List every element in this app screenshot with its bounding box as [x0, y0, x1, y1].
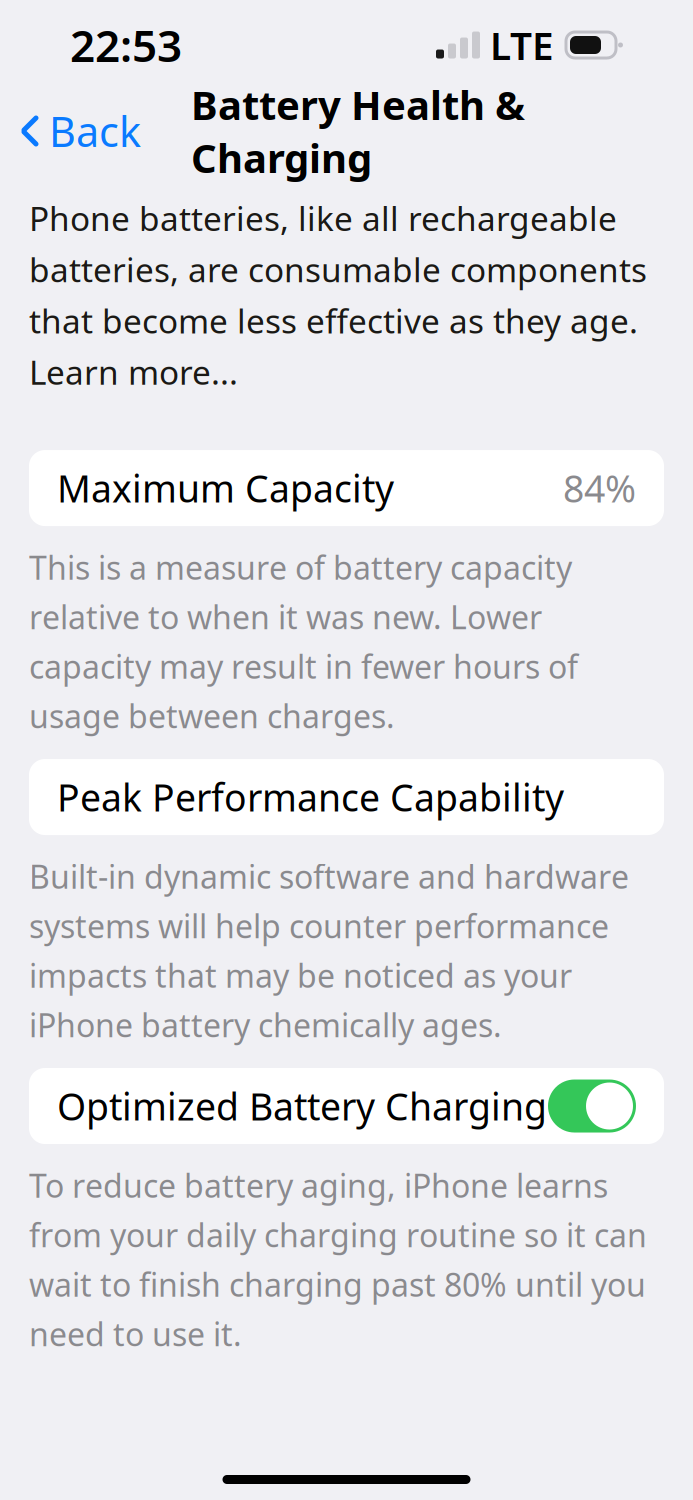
staticText: 22:53	[70, 16, 182, 74]
staticText: LTE	[490, 19, 554, 71]
button[interactable]: Peak Performance Capability	[29, 759, 664, 835]
staticText: Maximum Capacity	[57, 463, 394, 513]
staticText: Battery Health & Charging	[191, 78, 525, 184]
staticText: To reduce battery aging, iPhone learns f…	[29, 1164, 647, 1355]
staticText: Optimized Battery Charging	[57, 1081, 547, 1131]
staticText: This is a measure of battery capacity re…	[29, 546, 578, 737]
button[interactable]: Back	[16, 96, 145, 166]
staticText: Phone batteries, like all rechargeable b…	[29, 196, 647, 394]
staticText: Peak Performance Capability	[57, 772, 564, 822]
button[interactable]: Optimized Battery Charging	[548, 1079, 636, 1132]
staticText: Built-in dynamic software and hardware s…	[29, 855, 629, 1046]
staticText: 84%	[563, 463, 636, 513]
staticText: Back	[49, 104, 141, 158]
